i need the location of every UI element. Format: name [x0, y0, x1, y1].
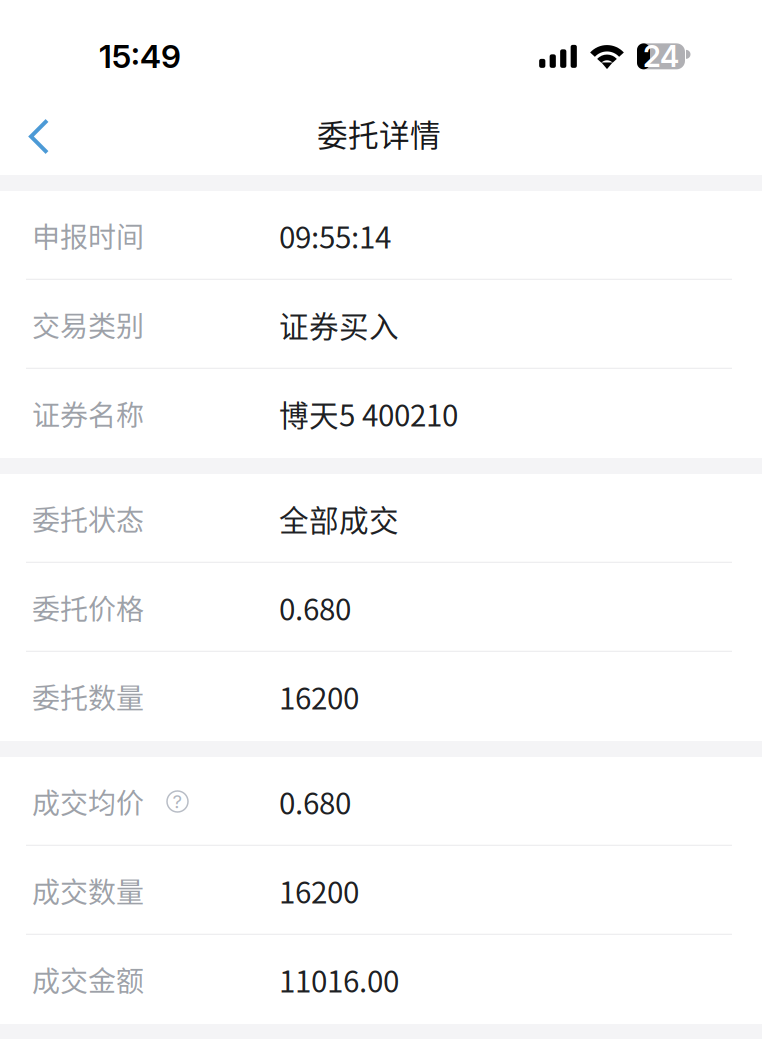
button[interactable]: 成交数量	[0, 846, 762, 935]
button[interactable]: 交易类别	[0, 280, 762, 369]
staticText: 委托状态	[32, 498, 144, 539]
staticText: 博天5 400210	[279, 392, 458, 435]
staticText: 15:49	[99, 37, 181, 76]
button[interactable]: 委托状态	[0, 474, 762, 563]
staticText: 交易类别	[32, 304, 144, 345]
staticText: 11016.00	[279, 958, 399, 1001]
button[interactable]: Back	[0, 93, 74, 173]
staticText: 24	[643, 39, 679, 74]
button[interactable]: 成交均价	[0, 757, 762, 846]
staticText: 16200	[279, 675, 359, 718]
button[interactable]: 成交金额	[0, 935, 762, 1024]
staticText: 委托价格	[32, 587, 144, 628]
staticText: 证券买入	[279, 303, 399, 346]
staticText: 16200	[279, 869, 359, 912]
staticText: 成交金额	[32, 959, 144, 1000]
button[interactable]: 申报时间	[0, 191, 762, 280]
button[interactable]: 委托价格	[0, 563, 762, 652]
staticText: 委托详情	[317, 111, 441, 156]
button[interactable]: 委托数量	[0, 652, 762, 741]
staticText: 申报时间	[32, 215, 144, 256]
staticText: 委托数量	[32, 676, 144, 717]
staticText: 0.680	[279, 780, 351, 823]
staticText: 证券名称	[32, 393, 144, 434]
staticText: 0.680	[279, 586, 351, 629]
staticText: ?	[172, 790, 182, 813]
staticText: 09:55:14	[279, 214, 391, 257]
staticText: 成交均价	[32, 781, 144, 822]
staticText: 全部成交	[279, 497, 399, 540]
staticText: 成交数量	[32, 870, 144, 911]
button[interactable]: 证券名称	[0, 369, 762, 458]
